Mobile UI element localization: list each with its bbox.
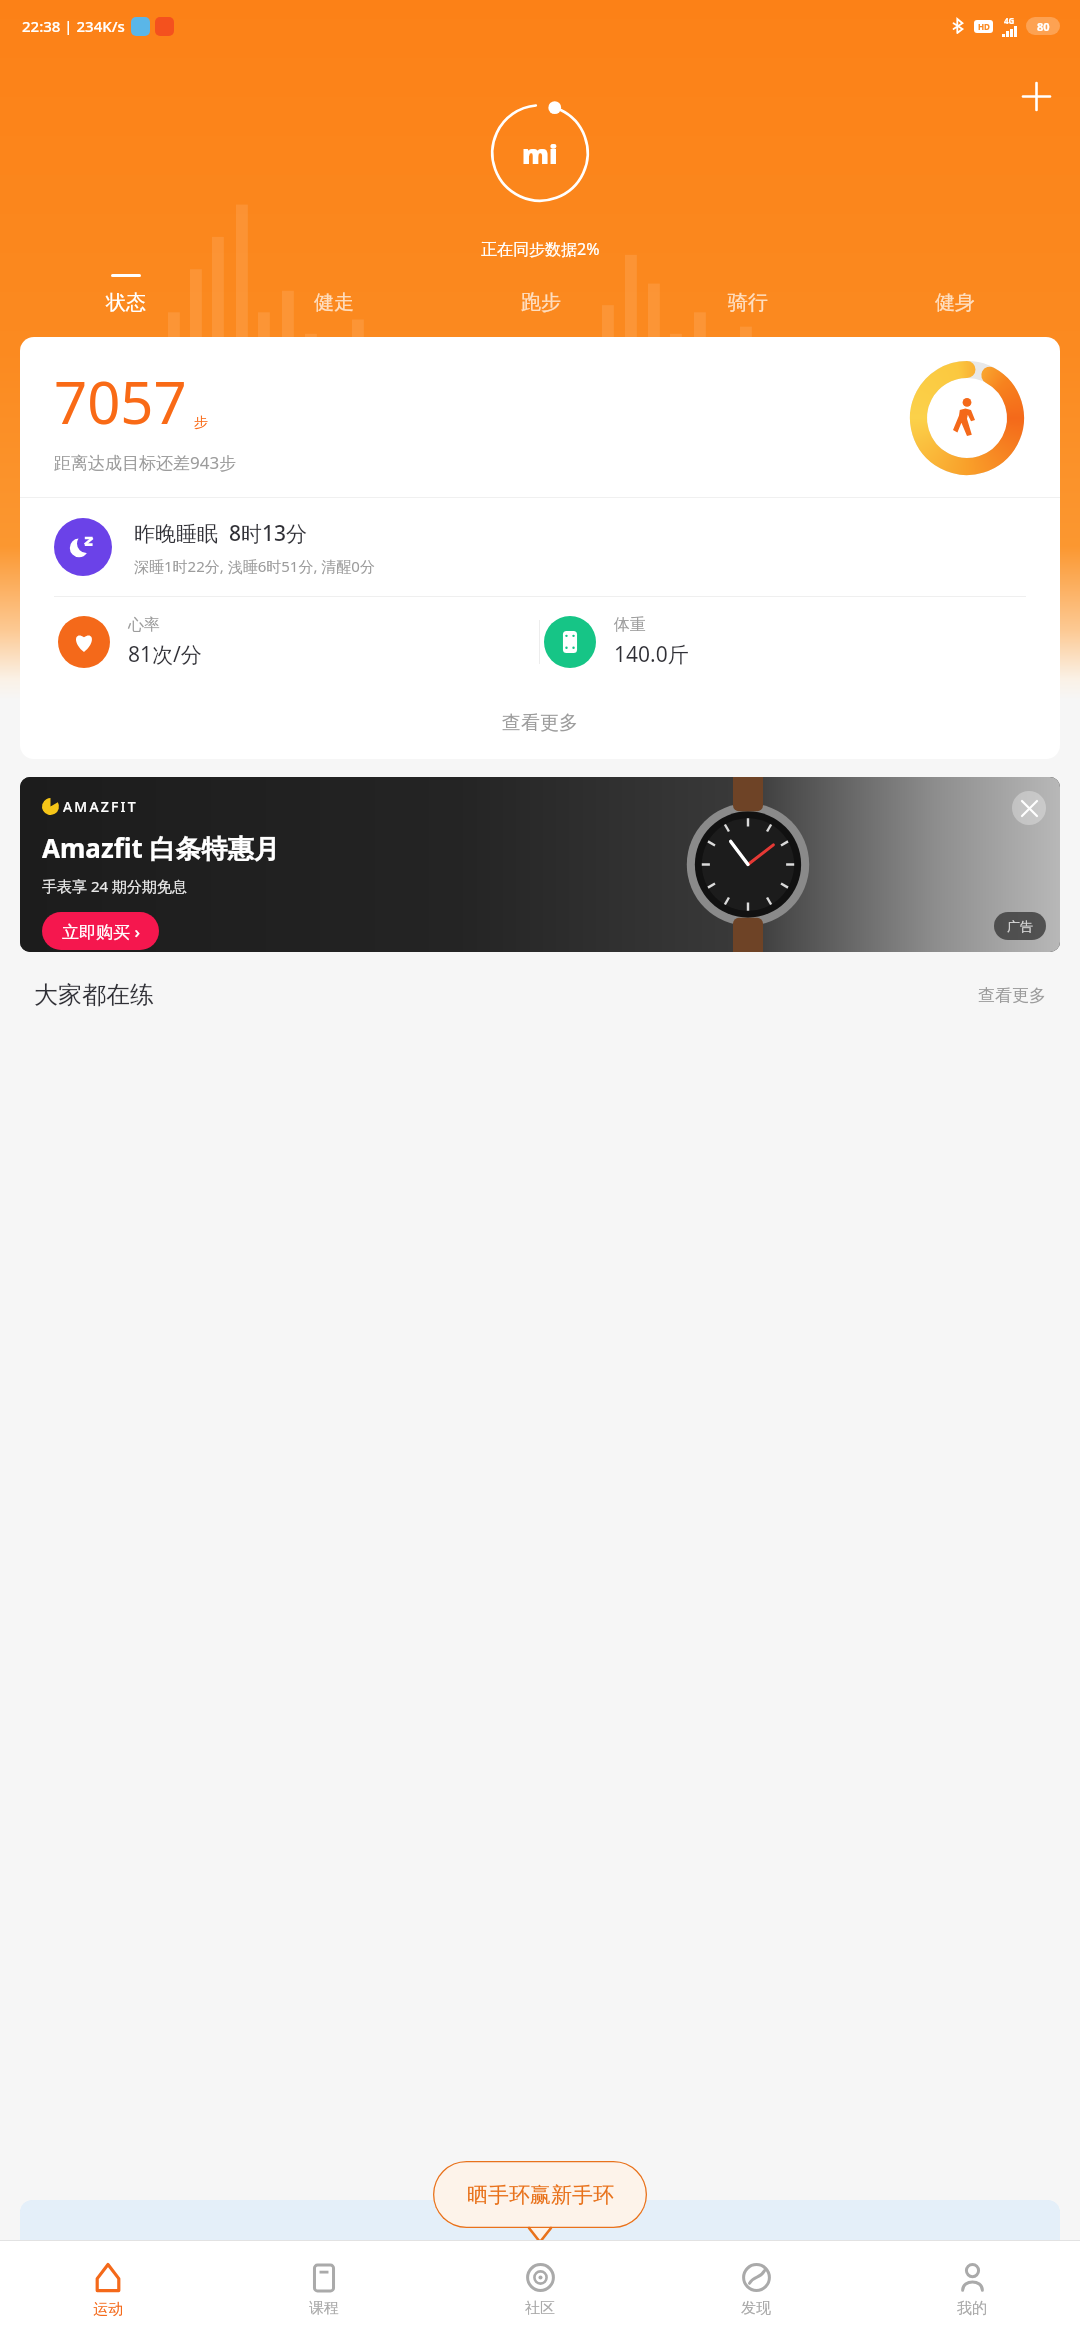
button[interactable]: 课程 bbox=[216, 2241, 432, 2340]
staticText: 查看更多 bbox=[502, 711, 578, 735]
staticText: 手表享 24 期分期免息 bbox=[42, 876, 187, 896]
button[interactable]: 查看更多 bbox=[20, 687, 1060, 759]
staticText: 发现 bbox=[741, 2299, 771, 2318]
button[interactable]: 运动 bbox=[0, 2241, 216, 2340]
button[interactable]: 健身 bbox=[851, 274, 1058, 315]
button[interactable]: 心率 bbox=[54, 615, 539, 669]
staticText: 心率 bbox=[128, 615, 160, 635]
staticText: 我的 bbox=[957, 2299, 987, 2318]
staticText: 广告 bbox=[1007, 918, 1033, 934]
staticText: 80 bbox=[1037, 19, 1050, 34]
button[interactable]: 状态 bbox=[22, 274, 230, 315]
button[interactable]: 健走 bbox=[230, 274, 437, 315]
button[interactable]: 7057 bbox=[20, 337, 1060, 497]
staticText: 立即购买 › bbox=[62, 920, 140, 943]
staticText: 22:38 | 234K/s bbox=[22, 16, 125, 36]
staticText: 大家都在练 bbox=[34, 980, 154, 1010]
staticText: Amazfit 白条特惠月 bbox=[42, 830, 280, 866]
staticText: 课程 bbox=[309, 2299, 339, 2318]
staticText: 140.0斤 bbox=[614, 640, 689, 669]
button[interactable]: 跑步 bbox=[437, 274, 644, 315]
staticText: 步 bbox=[194, 414, 208, 432]
button[interactable]: 体重 bbox=[540, 615, 1026, 669]
staticText: 体重 bbox=[614, 615, 646, 635]
staticText: AMAZFIT bbox=[63, 797, 138, 816]
staticText: 运动 bbox=[93, 2300, 123, 2319]
button[interactable]: 昨晚睡眠 8时13分 bbox=[20, 498, 1060, 596]
button[interactable]: 查看更多 bbox=[978, 985, 1046, 1006]
staticText: 跑步 bbox=[521, 290, 561, 315]
staticText: 距离达成目标还差943步 bbox=[54, 451, 237, 474]
staticText: 查看更多 bbox=[978, 985, 1046, 1006]
button[interactable]: 发现 bbox=[648, 2241, 864, 2340]
staticText: 状态 bbox=[106, 290, 146, 315]
staticText: 社区 bbox=[525, 2299, 555, 2318]
button[interactable]: AMAZFIT bbox=[20, 777, 1060, 952]
button[interactable]: 晒手环赢新手环 bbox=[433, 2161, 647, 2242]
button[interactable]: 社区 bbox=[432, 2241, 648, 2340]
staticText: HD bbox=[978, 21, 990, 32]
staticText: 健走 bbox=[314, 290, 354, 315]
button[interactable]: 骑行 bbox=[644, 274, 851, 315]
staticText: 骑行 bbox=[728, 290, 768, 315]
staticText: 晒手环赢新手环 bbox=[467, 2182, 614, 2208]
staticText: 健身 bbox=[935, 290, 975, 315]
staticText: mi bbox=[522, 135, 558, 172]
button[interactable]: Add bbox=[1014, 74, 1058, 118]
staticText: 正在同步数据2% bbox=[481, 238, 600, 260]
button[interactable]: 我的 bbox=[864, 2241, 1080, 2340]
staticText: 深睡1时22分, 浅睡6时51分, 清醒0分 bbox=[134, 556, 375, 576]
button[interactable]: Close ad bbox=[1012, 791, 1046, 825]
staticText: 昨晚睡眠 8时13分 bbox=[134, 519, 307, 548]
staticText: 7057 bbox=[54, 362, 187, 441]
staticText: 4G bbox=[1004, 15, 1015, 26]
button[interactable]: 立即购买 › bbox=[42, 912, 159, 950]
staticText: 81次/分 bbox=[128, 640, 202, 669]
